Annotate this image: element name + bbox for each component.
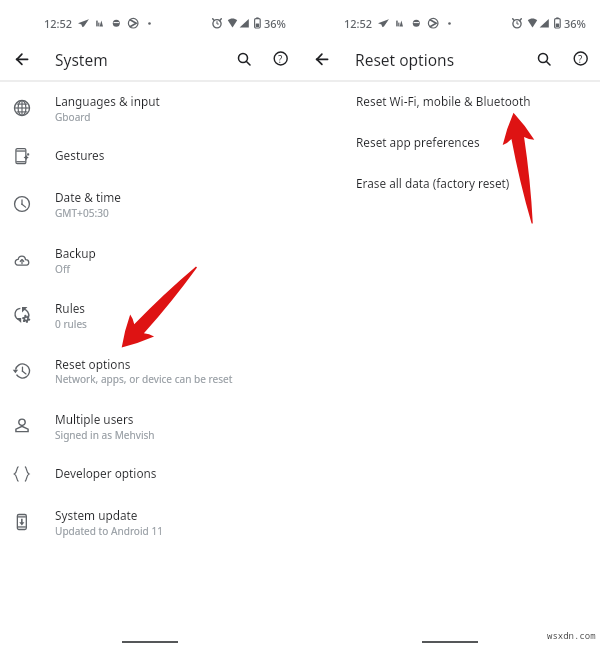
staticText: Reset Wi-Fi, mobile & Bluetooth [356, 93, 531, 109]
button[interactable]: Multiple users [0, 398, 300, 454]
button[interactable]: Back [6, 45, 38, 77]
staticText: GMT+05:30 [55, 206, 109, 220]
button[interactable]: Date & time [0, 176, 300, 232]
button[interactable]: Search [527, 44, 559, 76]
staticText: Network, apps, or device can be reset [55, 372, 233, 386]
staticText: 36% [264, 16, 286, 31]
staticText: ? [278, 52, 283, 66]
staticText: 12:52 [344, 16, 373, 31]
staticText: ? [578, 52, 583, 66]
button[interactable]: Help [265, 44, 297, 76]
staticText: Off [55, 262, 70, 276]
button[interactable]: Help [565, 44, 597, 76]
staticText: 36% [564, 16, 586, 31]
button[interactable]: Reset options [0, 343, 300, 399]
staticText: Signed in as Mehvish [55, 428, 155, 442]
button[interactable]: Reset app preferences [300, 122, 600, 163]
button[interactable]: Erase all data (factory reset) [300, 163, 600, 204]
staticText: Multiple users [55, 411, 134, 427]
staticText: Reset app preferences [356, 134, 480, 150]
staticText: System [55, 49, 108, 70]
staticText: Reset options [355, 49, 455, 70]
staticText: 0 rules [55, 317, 87, 331]
staticText: System update [55, 507, 138, 523]
button[interactable]: Gestures [0, 136, 300, 177]
button[interactable]: Back [306, 45, 338, 77]
button[interactable]: Rules [0, 287, 300, 343]
button[interactable]: Developer options [0, 454, 300, 495]
staticText: Developer options [55, 465, 157, 481]
button[interactable]: Languages & input [0, 80, 300, 136]
staticText: Gestures [55, 147, 105, 163]
button[interactable]: Backup [0, 232, 300, 288]
button[interactable]: System update [0, 494, 300, 550]
staticText: Date & time [55, 189, 121, 205]
staticText: Gboard [55, 110, 91, 124]
staticText: Backup [55, 245, 96, 261]
button[interactable]: Search [227, 44, 259, 76]
staticText: Erase all data (factory reset) [356, 175, 510, 191]
staticText: 12:52 [44, 16, 73, 31]
staticText: Languages & input [55, 93, 160, 109]
staticText: Reset options [55, 356, 131, 372]
staticText: wsxdn.com [547, 629, 596, 641]
staticText: Rules [55, 300, 85, 316]
button[interactable]: Reset Wi-Fi, mobile & Bluetooth [300, 81, 600, 122]
staticText: Updated to Android 11 [55, 524, 163, 538]
